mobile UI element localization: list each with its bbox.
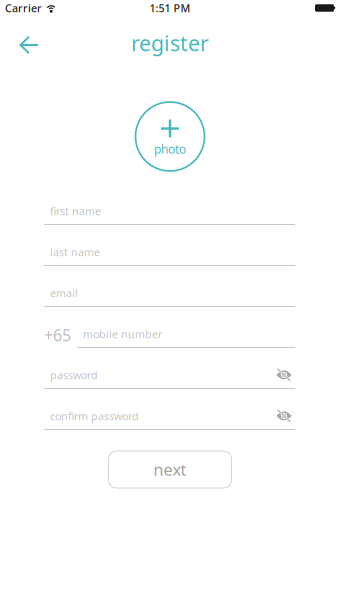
button[interactable]: Show password bbox=[273, 367, 295, 383]
staticText: email bbox=[50, 286, 78, 300]
button[interactable]: Add photo bbox=[135, 102, 204, 171]
button[interactable]: next bbox=[108, 451, 231, 488]
staticText: next bbox=[153, 459, 186, 480]
staticText: last name bbox=[50, 245, 100, 259]
staticText: mobile number bbox=[83, 327, 162, 341]
staticText: register bbox=[131, 29, 209, 57]
staticText: 1:51 PM bbox=[149, 1, 190, 15]
button[interactable]: Back bbox=[7, 25, 51, 65]
staticText: photo bbox=[154, 141, 186, 157]
staticText: confirm password bbox=[50, 409, 139, 423]
staticText: password bbox=[50, 368, 98, 382]
staticText: first name bbox=[50, 204, 101, 218]
staticText: +65 bbox=[44, 324, 71, 346]
staticText: Carrier bbox=[5, 1, 42, 15]
button[interactable]: Show password bbox=[273, 408, 295, 424]
